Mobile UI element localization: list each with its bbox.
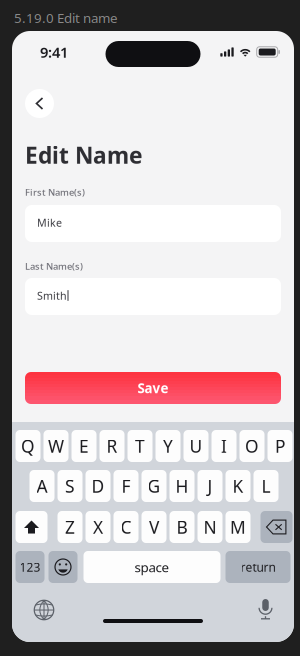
button[interactable]: C [113, 511, 138, 543]
button[interactable]: F [113, 470, 138, 502]
staticText: A [36, 474, 47, 497]
staticText: K [232, 474, 243, 497]
staticText: G [147, 474, 160, 497]
staticText: S [65, 474, 75, 497]
button[interactable]: Y [155, 430, 180, 462]
staticText: space [134, 558, 169, 576]
button[interactable]: G [141, 470, 166, 502]
staticText: L [261, 474, 270, 497]
button[interactable]: space [83, 551, 220, 583]
staticText: N [203, 515, 216, 538]
button[interactable]: T [127, 430, 152, 462]
button[interactable]: K [225, 470, 250, 502]
button[interactable]: W [43, 430, 68, 462]
staticText: Y [163, 434, 173, 457]
staticText: I [221, 434, 227, 457]
button[interactable]: Change keyboard [34, 600, 54, 620]
button[interactable]: P [267, 430, 292, 462]
button[interactable]: Delete [260, 511, 292, 543]
button[interactable]: Z [57, 511, 82, 543]
staticText: Smith [37, 288, 67, 303]
button[interactable]: Dictation [258, 598, 273, 619]
staticText: Q [21, 434, 35, 457]
staticText: Mike [37, 215, 62, 230]
button[interactable]: Back [25, 89, 54, 118]
button[interactable]: 123 [15, 551, 44, 583]
button[interactable]: D [85, 470, 110, 502]
button[interactable]: N [197, 511, 222, 543]
staticText: X [93, 515, 103, 538]
button[interactable]: Shift [15, 511, 47, 543]
staticText: J [207, 474, 212, 497]
staticText: Edit Name [25, 140, 143, 170]
staticText: C [120, 515, 131, 538]
staticText: 9:41 [40, 42, 68, 62]
button[interactable]: S [57, 470, 82, 502]
staticText: T [135, 434, 145, 457]
staticText: Last Name(s) [25, 260, 83, 272]
staticText: R [106, 434, 117, 457]
button[interactable]: B [169, 511, 194, 543]
staticText: 5.19.0 Edit name [14, 9, 118, 27]
staticText: O [245, 434, 259, 457]
button[interactable]: X [85, 511, 110, 543]
staticText: B [176, 515, 187, 538]
button[interactable]: O [239, 430, 264, 462]
button[interactable]: H [169, 470, 194, 502]
staticText: Z [65, 515, 75, 538]
staticText: Save [137, 379, 168, 397]
staticText: First Name(s) [25, 186, 85, 198]
staticText: 123 [19, 559, 40, 575]
button[interactable]: U [183, 430, 208, 462]
staticText: V [149, 515, 159, 538]
staticText: E [79, 434, 89, 457]
button[interactable]: V [141, 511, 166, 543]
staticText: D [91, 474, 104, 497]
button[interactable]: return [225, 551, 290, 583]
button[interactable]: Q [15, 430, 40, 462]
staticText: P [275, 434, 285, 457]
staticText: H [175, 474, 188, 497]
button[interactable]: R [99, 430, 124, 462]
staticText: M [230, 515, 246, 538]
button[interactable]: E [71, 430, 96, 462]
button[interactable]: Save [25, 372, 281, 404]
button[interactable]: J [197, 470, 222, 502]
staticText: W [48, 434, 64, 457]
staticText: return [240, 559, 275, 575]
staticText: F [121, 474, 130, 497]
button[interactable]: A [29, 470, 54, 502]
button[interactable]: M [225, 511, 250, 543]
button[interactable]: L [253, 470, 278, 502]
staticText: U [189, 434, 202, 457]
button[interactable]: I [211, 430, 236, 462]
button[interactable]: Emoji [48, 551, 77, 583]
